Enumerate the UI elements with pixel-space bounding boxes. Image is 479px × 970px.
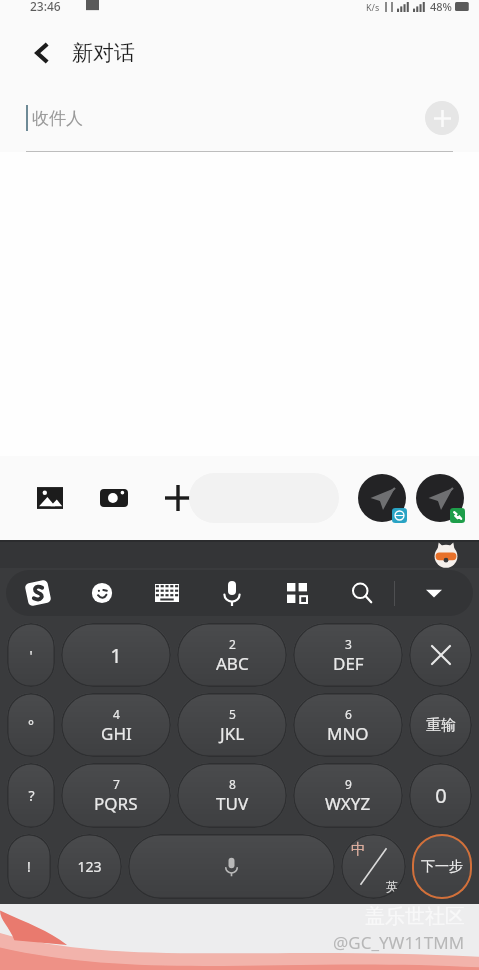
- button[interactable]: °: [7, 693, 55, 757]
- button[interactable]: Sogou input: [6, 570, 70, 616]
- button[interactable]: 0: [409, 763, 472, 828]
- button[interactable]: 123: [57, 834, 122, 899]
- staticText: PQRS: [94, 792, 138, 815]
- staticText: 收件人: [32, 108, 83, 129]
- button[interactable]: Gallery: [28, 476, 72, 520]
- button[interactable]: 7: [61, 763, 171, 828]
- button[interactable]: 3: [293, 623, 403, 687]
- staticText: 3: [345, 636, 352, 652]
- button[interactable]: 9: [293, 763, 403, 828]
- staticText: 48%: [430, 0, 452, 14]
- button[interactable]: ': [7, 623, 55, 687]
- button[interactable]: More options: [156, 476, 200, 520]
- button[interactable]: 4: [61, 693, 171, 757]
- staticText: 2: [229, 636, 236, 652]
- button[interactable]: [128, 834, 335, 899]
- button[interactable]: 6: [293, 693, 403, 757]
- staticText: 新对话: [72, 40, 135, 66]
- staticText: 8: [229, 776, 236, 792]
- button[interactable]: Back: [22, 33, 62, 73]
- button[interactable]: 5: [177, 693, 287, 757]
- staticText: °: [28, 716, 34, 735]
- button[interactable]: Search: [329, 570, 394, 616]
- staticText: K/s: [366, 1, 380, 13]
- button[interactable]: [409, 623, 472, 687]
- staticText: JKL: [220, 722, 245, 745]
- button[interactable]: Voice input: [199, 570, 264, 616]
- button[interactable]: 8: [177, 763, 287, 828]
- button[interactable]: Add recipient: [425, 101, 459, 135]
- button[interactable]: Keyboard layout: [134, 570, 199, 616]
- button[interactable]: Send SMS: [415, 473, 465, 523]
- staticText: @GC_YW11TMM: [333, 931, 465, 954]
- staticText: 下一步: [421, 858, 463, 876]
- staticText: DEF: [333, 652, 364, 675]
- button[interactable]: Apps: [264, 570, 329, 616]
- button[interactable]: !: [7, 834, 51, 899]
- staticText: 23:46: [30, 0, 61, 14]
- staticText: WXYZ: [325, 792, 371, 815]
- button[interactable]: 重输: [409, 693, 472, 757]
- staticText: ABC: [216, 652, 249, 675]
- button[interactable]: 1: [61, 623, 171, 687]
- button[interactable]: Hide keyboard: [395, 570, 473, 616]
- staticText: !: [27, 857, 31, 876]
- staticText: GHI: [101, 722, 132, 745]
- staticText: 9: [345, 776, 352, 792]
- staticText: ?: [28, 786, 35, 805]
- button[interactable]: Camera: [92, 476, 136, 520]
- staticText: 英: [386, 879, 398, 894]
- staticText: 盖乐世社区: [365, 904, 465, 929]
- staticText: MNO: [327, 722, 369, 745]
- staticText: 123: [77, 857, 102, 876]
- button[interactable]: 2: [177, 623, 287, 687]
- staticText: 4: [113, 706, 120, 722]
- staticText: 1: [110, 642, 122, 669]
- button[interactable]: ?: [7, 763, 55, 828]
- staticText: 0: [435, 782, 447, 809]
- button[interactable]: Send as message: [357, 473, 407, 523]
- staticText: ': [29, 646, 33, 665]
- button[interactable]: 中: [341, 834, 406, 899]
- staticText: 6: [345, 706, 352, 722]
- staticText: 5: [229, 706, 236, 722]
- button[interactable]: Emoji: [70, 570, 134, 616]
- button[interactable]: 下一步: [412, 834, 472, 899]
- staticText: 重输: [426, 716, 456, 735]
- staticText: TUV: [216, 792, 249, 815]
- staticText: 中: [351, 840, 366, 859]
- staticText: 7: [113, 776, 120, 792]
